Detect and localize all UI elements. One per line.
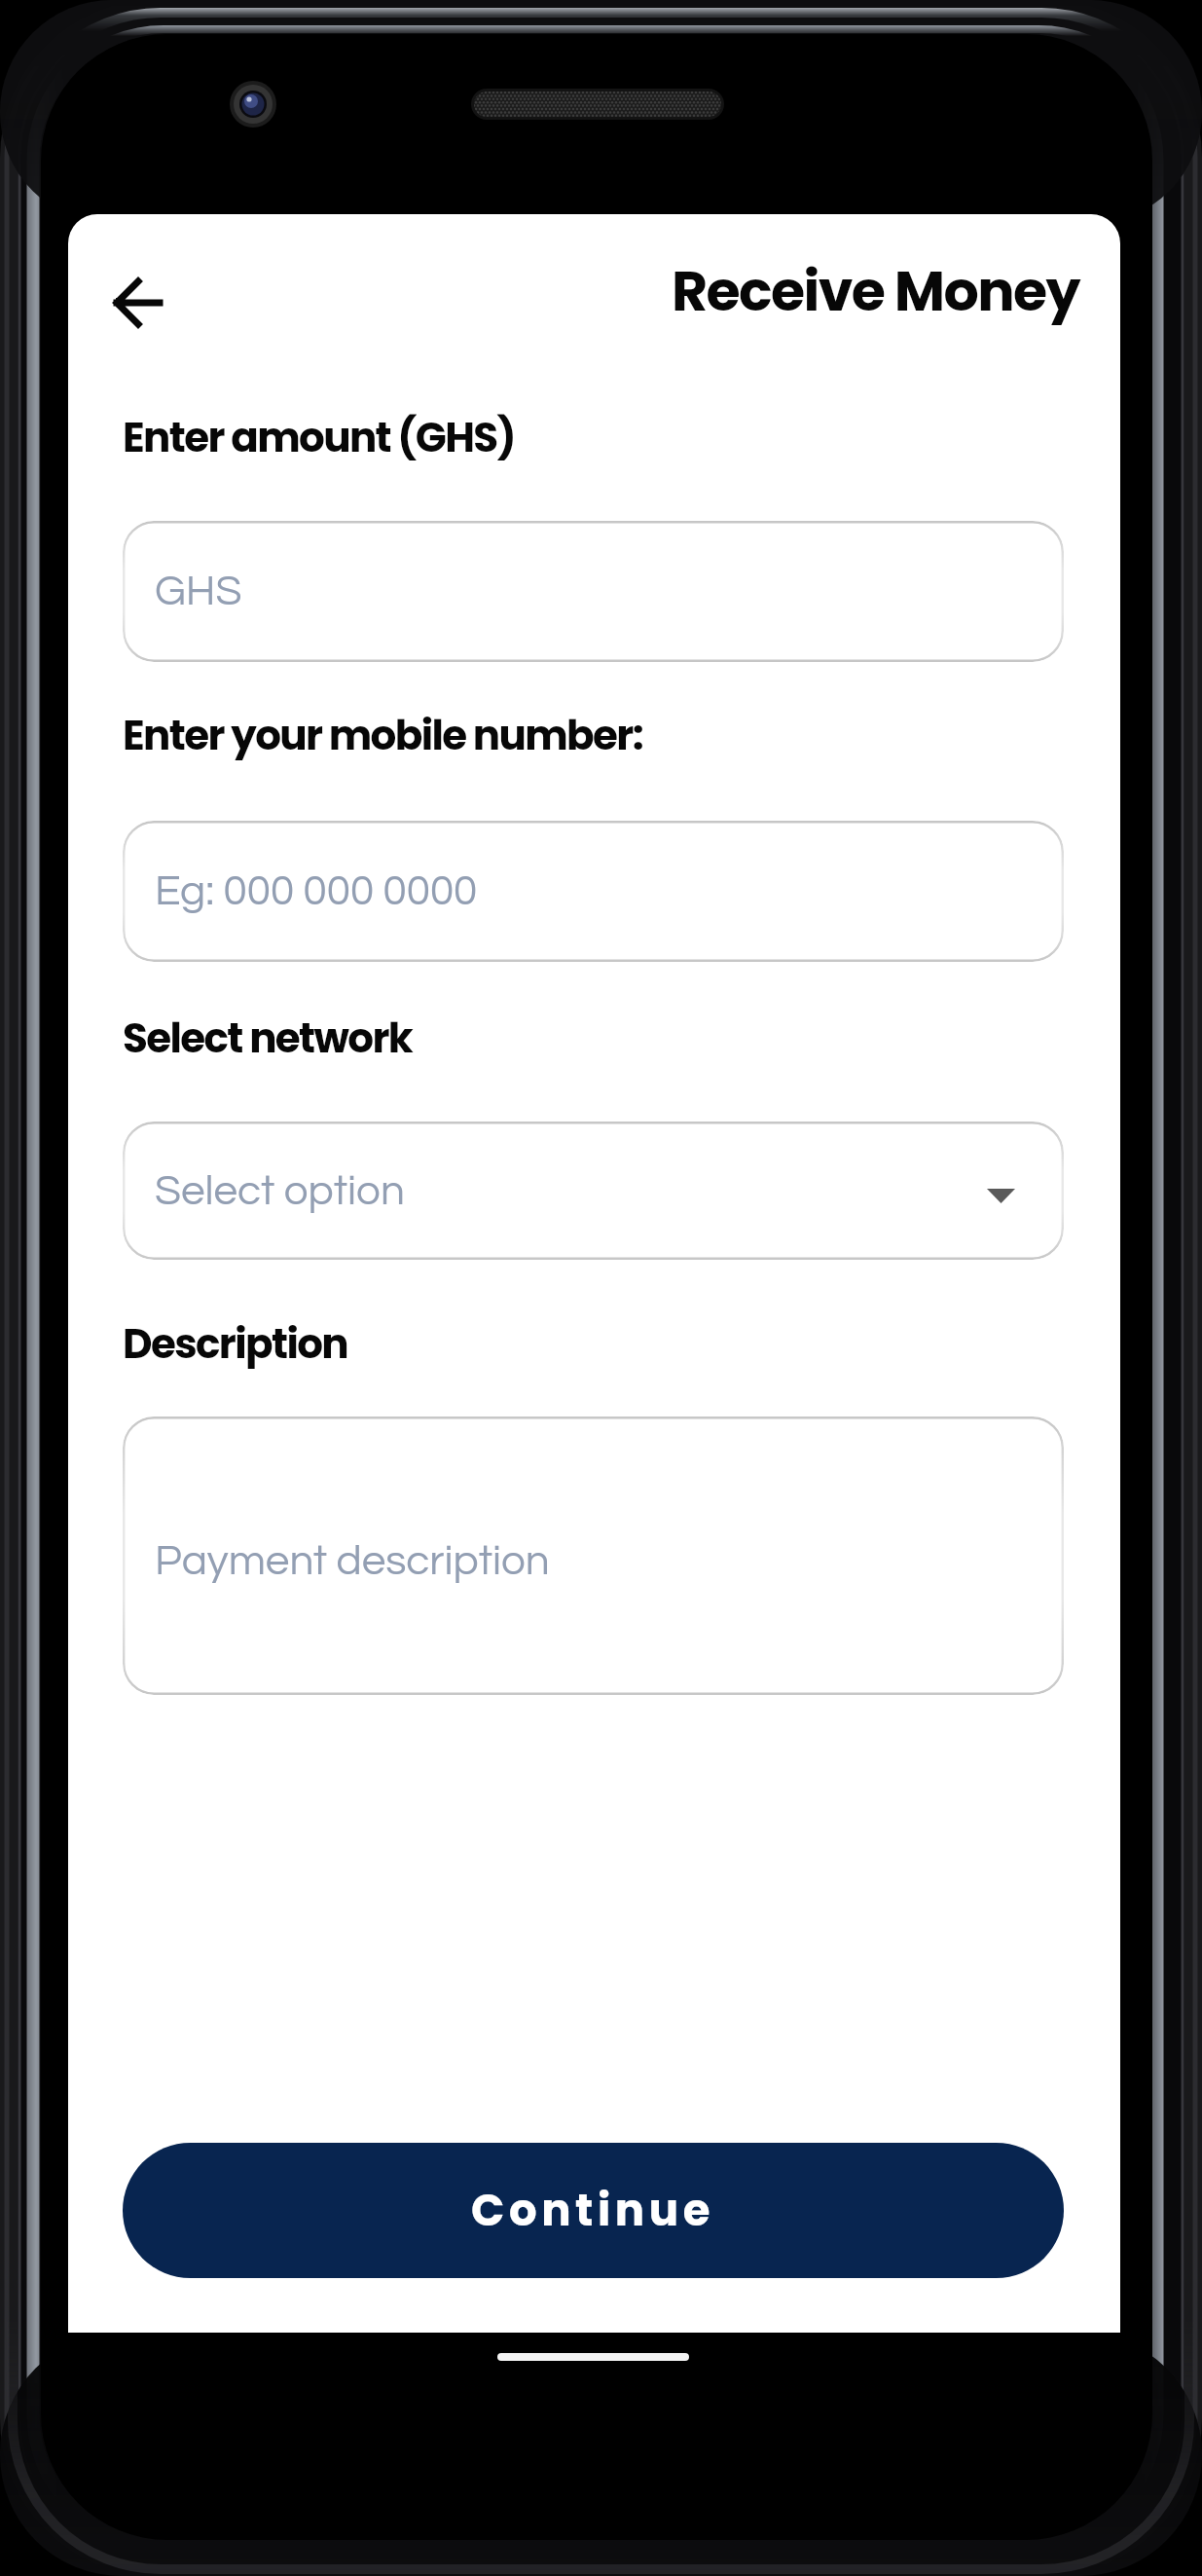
staticText: Eg: 000 000 0000 [155, 869, 478, 913]
staticText: Receive Money [593, 252, 1079, 330]
staticText: Continue [471, 2180, 715, 2241]
staticText: Select option [155, 1169, 405, 1213]
staticText: Select network [123, 1010, 413, 1067]
button[interactable]: Select option [123, 1122, 1064, 1260]
staticText: Payment description [155, 1539, 550, 1583]
staticText: GHS [155, 570, 242, 613]
button[interactable]: Eg: 000 000 0000 [123, 821, 1064, 962]
staticText: Enter amount (GHS) [123, 409, 515, 466]
button[interactable]: GHS [123, 521, 1064, 662]
staticText: Description [123, 1315, 348, 1373]
button[interactable]: Payment description [123, 1417, 1064, 1695]
button[interactable]: Back [93, 258, 183, 348]
button[interactable]: Continue [123, 2143, 1064, 2278]
staticText: Enter your mobile number: [123, 707, 643, 764]
